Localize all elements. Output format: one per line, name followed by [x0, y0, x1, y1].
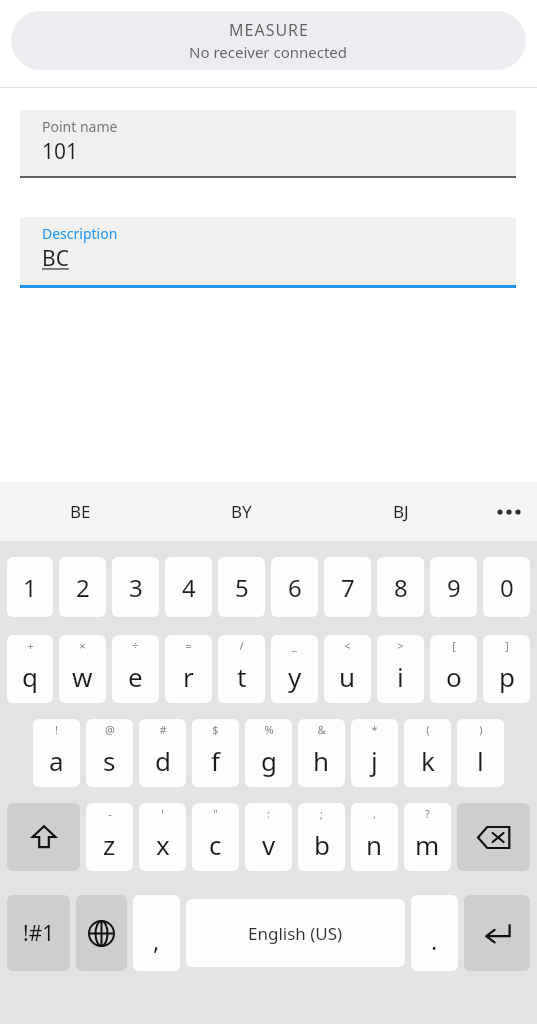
- staticText: ÷: [132, 638, 139, 653]
- button[interactable]: Point name: [20, 110, 516, 178]
- staticText: ]: [505, 638, 509, 653]
- button[interactable]: Shift: [7, 803, 80, 871]
- staticText: y: [288, 659, 302, 694]
- staticText: $: [212, 722, 219, 737]
- staticText: 0: [500, 571, 514, 604]
- button[interactable]: Change keyboard language: [76, 895, 127, 971]
- staticText: Point name: [42, 117, 118, 136]
- staticText: BE: [70, 500, 91, 523]
- button[interactable]: [245, 719, 292, 787]
- staticText: e: [128, 659, 143, 694]
- button[interactable]: [165, 557, 212, 617]
- staticText: ): [479, 722, 483, 737]
- button[interactable]: [298, 719, 345, 787]
- button[interactable]: [404, 719, 451, 787]
- button[interactable]: [7, 557, 53, 617]
- staticText: 4: [182, 571, 196, 604]
- button[interactable]: [245, 803, 292, 871]
- button[interactable]: [59, 635, 106, 703]
- staticText: [: [452, 638, 456, 653]
- button[interactable]: [351, 803, 398, 871]
- button[interactable]: [112, 557, 159, 617]
- staticText: i: [397, 659, 404, 694]
- staticText: 5: [235, 571, 249, 604]
- button[interactable]: Enter: [464, 895, 530, 971]
- staticText: ,: [153, 924, 160, 957]
- button[interactable]: [86, 803, 133, 871]
- staticText: BC: [42, 244, 69, 273]
- button[interactable]: [165, 635, 212, 703]
- staticText: q: [22, 659, 38, 694]
- button[interactable]: [377, 557, 424, 617]
- button[interactable]: BJ: [321, 482, 481, 541]
- button[interactable]: More suggestions: [481, 482, 537, 541]
- button[interactable]: [430, 557, 477, 617]
- staticText: /: [239, 638, 244, 653]
- button[interactable]: [112, 635, 159, 703]
- staticText: o: [446, 659, 462, 694]
- staticText: r: [183, 659, 194, 694]
- staticText: !#1: [23, 919, 55, 948]
- button[interactable]: [324, 635, 371, 703]
- staticText: a: [49, 743, 64, 778]
- button[interactable]: Backspace: [457, 803, 530, 871]
- button[interactable]: [133, 895, 180, 971]
- button[interactable]: !#1: [7, 895, 70, 971]
- button[interactable]: [218, 557, 265, 617]
- staticText: n: [366, 827, 383, 862]
- button[interactable]: [7, 635, 53, 703]
- button[interactable]: [483, 635, 530, 703]
- button[interactable]: [192, 803, 239, 871]
- button[interactable]: [351, 719, 398, 787]
- button[interactable]: [271, 635, 318, 703]
- staticText: =: [185, 638, 192, 653]
- staticText: d: [155, 743, 171, 778]
- button[interactable]: [483, 557, 530, 617]
- staticText: ;: [320, 806, 323, 821]
- staticText: k: [421, 743, 435, 778]
- staticText: +: [27, 638, 34, 653]
- button[interactable]: BY: [161, 482, 321, 541]
- staticText: 8: [394, 571, 408, 604]
- staticText: No receiver connected: [189, 42, 348, 62]
- staticText: c: [209, 827, 222, 862]
- button[interactable]: [411, 895, 458, 971]
- button[interactable]: [377, 635, 424, 703]
- button[interactable]: Description: [20, 217, 516, 288]
- staticText: <: [344, 638, 351, 653]
- staticText: BJ: [393, 500, 409, 523]
- staticText: BY: [231, 500, 252, 523]
- staticText: ×: [79, 638, 86, 653]
- staticText: English (US): [248, 922, 343, 945]
- button[interactable]: MEASURE: [11, 11, 526, 70]
- staticText: :: [267, 806, 270, 821]
- staticText: 1: [23, 571, 37, 604]
- staticText: &: [317, 722, 326, 737]
- button[interactable]: [192, 719, 239, 787]
- staticText: f: [211, 743, 220, 778]
- button[interactable]: [298, 803, 345, 871]
- staticText: -: [108, 806, 112, 821]
- staticText: ?: [425, 806, 430, 821]
- button[interactable]: [59, 557, 106, 617]
- button[interactable]: [33, 719, 80, 787]
- staticText: Description: [42, 224, 118, 243]
- button[interactable]: [324, 557, 371, 617]
- button[interactable]: BE: [0, 482, 161, 541]
- button[interactable]: [430, 635, 477, 703]
- staticText: p: [499, 659, 515, 694]
- button[interactable]: [139, 719, 186, 787]
- staticText: @: [105, 722, 115, 737]
- staticText: #: [159, 722, 167, 737]
- button[interactable]: [86, 719, 133, 787]
- staticText: v: [262, 827, 276, 862]
- button[interactable]: [457, 719, 504, 787]
- button[interactable]: English (US): [186, 899, 405, 967]
- staticText: *: [371, 722, 378, 737]
- button[interactable]: [404, 803, 451, 871]
- staticText: z: [103, 827, 116, 862]
- button[interactable]: [218, 635, 265, 703]
- button[interactable]: [271, 557, 318, 617]
- button[interactable]: [139, 803, 186, 871]
- staticText: w: [72, 659, 93, 694]
